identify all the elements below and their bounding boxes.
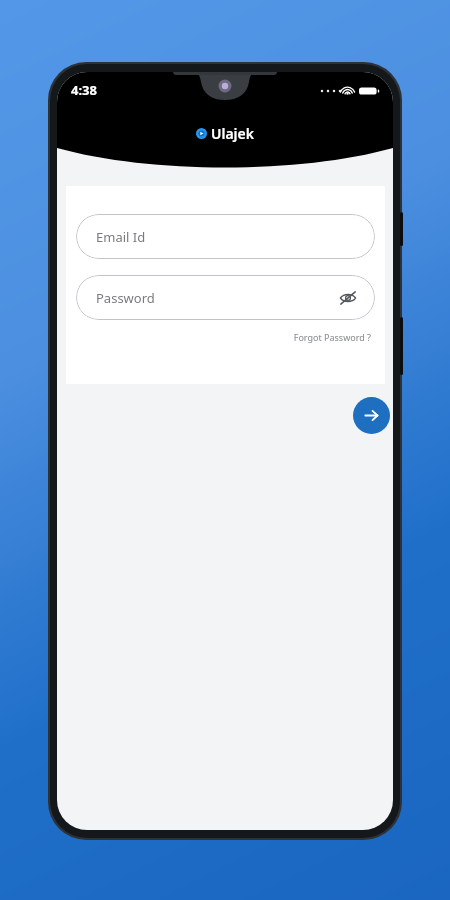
button[interactable]: Continue	[353, 397, 390, 434]
button[interactable]: Forgot Password ?	[289, 329, 375, 345]
staticText: Ulajek	[211, 124, 254, 143]
staticText: Password	[96, 289, 155, 307]
staticText: Email Id	[96, 228, 146, 246]
button[interactable]: Email Id	[76, 214, 375, 259]
staticText: 4:38	[71, 81, 97, 99]
button[interactable]: Show password	[337, 287, 359, 309]
button[interactable]: Password	[76, 275, 375, 320]
